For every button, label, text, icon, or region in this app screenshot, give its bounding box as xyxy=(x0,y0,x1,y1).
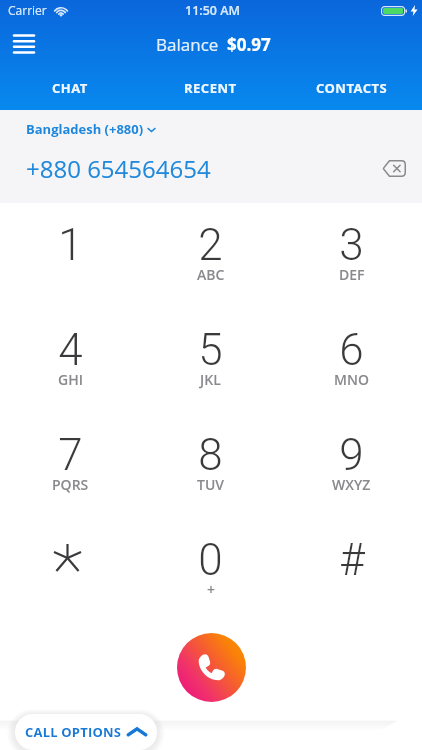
button[interactable]: 3 xyxy=(281,210,422,315)
staticText: 3 xyxy=(339,219,364,271)
staticText: CALL OPTIONS xyxy=(25,723,122,741)
staticText: 1 xyxy=(58,219,83,271)
staticText: 8 xyxy=(198,429,223,481)
staticText: JKL xyxy=(200,370,221,389)
staticText: Carrier xyxy=(8,2,47,18)
staticText: RECENT xyxy=(184,79,237,97)
staticText: Bangladesh (+880) xyxy=(26,120,144,138)
staticText: ABC xyxy=(197,265,225,284)
staticText: TUV xyxy=(197,475,225,494)
staticText: # xyxy=(339,534,365,586)
button[interactable] xyxy=(0,525,140,630)
staticText: 6 xyxy=(339,324,364,376)
button[interactable]: 2 xyxy=(140,210,281,315)
staticText: 9 xyxy=(339,429,364,481)
button[interactable]: Bangladesh (+880) xyxy=(26,120,157,138)
button[interactable]: 9 xyxy=(281,420,422,525)
staticText: CHAT xyxy=(52,79,88,97)
staticText: PQRS xyxy=(52,475,89,494)
button[interactable]: Backspace xyxy=(370,144,418,192)
staticText: 5 xyxy=(198,324,223,376)
button[interactable]: CALL OPTIONS xyxy=(15,714,157,750)
staticText: 0 xyxy=(198,534,223,586)
staticText: MNO xyxy=(334,370,369,389)
button[interactable]: Call xyxy=(177,633,246,702)
staticText: Balance xyxy=(156,33,219,56)
staticText: CONTACTS xyxy=(316,79,388,97)
button[interactable]: 7 xyxy=(0,420,140,525)
button[interactable]: 4 xyxy=(0,315,140,420)
button[interactable]: 8 xyxy=(140,420,281,525)
staticText: 4 xyxy=(58,324,83,376)
staticText: DEF xyxy=(339,265,365,284)
button[interactable]: 1 xyxy=(0,210,140,315)
staticText: 2 xyxy=(198,219,223,271)
staticText: 11:50 AM xyxy=(185,2,241,19)
button[interactable]: 5 xyxy=(140,315,281,420)
staticText: +880 654564654 xyxy=(26,152,211,185)
button[interactable]: RECENT xyxy=(140,66,281,110)
staticText: 7 xyxy=(58,429,83,481)
button[interactable]: CHAT xyxy=(0,66,140,110)
button[interactable]: 0 xyxy=(140,525,281,630)
staticText: $0.97 xyxy=(227,33,271,56)
button[interactable]: CONTACTS xyxy=(281,66,422,110)
button[interactable]: Menu xyxy=(2,22,46,66)
staticText: GHI xyxy=(58,370,83,389)
staticText: WXYZ xyxy=(332,475,371,494)
staticText: + xyxy=(207,580,215,599)
button[interactable]: # xyxy=(281,525,422,630)
button[interactable]: 6 xyxy=(281,315,422,420)
